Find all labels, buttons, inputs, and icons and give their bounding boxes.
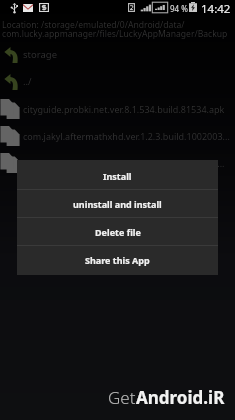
button[interactable]: cityguide.probki.net.ver.8.1.534.build.8… (0, 95, 235, 122)
staticText: uninstall and install (73, 198, 162, 210)
staticText: storage (23, 48, 57, 61)
staticText: Location: /storage/emulated/0/Android/da… (2, 19, 185, 31)
staticText: 14:42 (201, 1, 231, 14)
staticText: com.lucky.appmanager/files/LuckyAppManag… (2, 28, 228, 40)
staticText: 94 % (170, 3, 188, 14)
button[interactable]: storage (0, 41, 235, 68)
staticText: com.gameloft.android.ANMP.GloftM5HM.ver.… (23, 157, 225, 169)
staticText: ../ (23, 75, 32, 88)
button[interactable]: ../ (0, 68, 235, 95)
button[interactable]: Share this App (17, 246, 218, 273)
staticText: Delete file (95, 226, 141, 238)
button[interactable]: com.jakyl.aftermathxhd.ver.1.2.3.build.1… (0, 122, 235, 149)
button[interactable]: Install (17, 162, 218, 189)
staticText: Get (108, 386, 136, 409)
staticText: Android.iR (136, 386, 225, 409)
button[interactable]: com.gameloft.android.ANMP.GloftM5HM.ver.… (0, 149, 235, 176)
staticText: cityguide.probki.net.ver.8.1.534.build.8… (23, 103, 225, 115)
staticText: Install (103, 170, 132, 182)
staticText: com.jakyl.aftermathxhd.ver.1.2.3.build.1… (23, 130, 230, 142)
staticText: Share this App (85, 254, 150, 266)
button[interactable]: Delete file (17, 218, 218, 245)
button[interactable]: uninstall and install (17, 190, 218, 217)
